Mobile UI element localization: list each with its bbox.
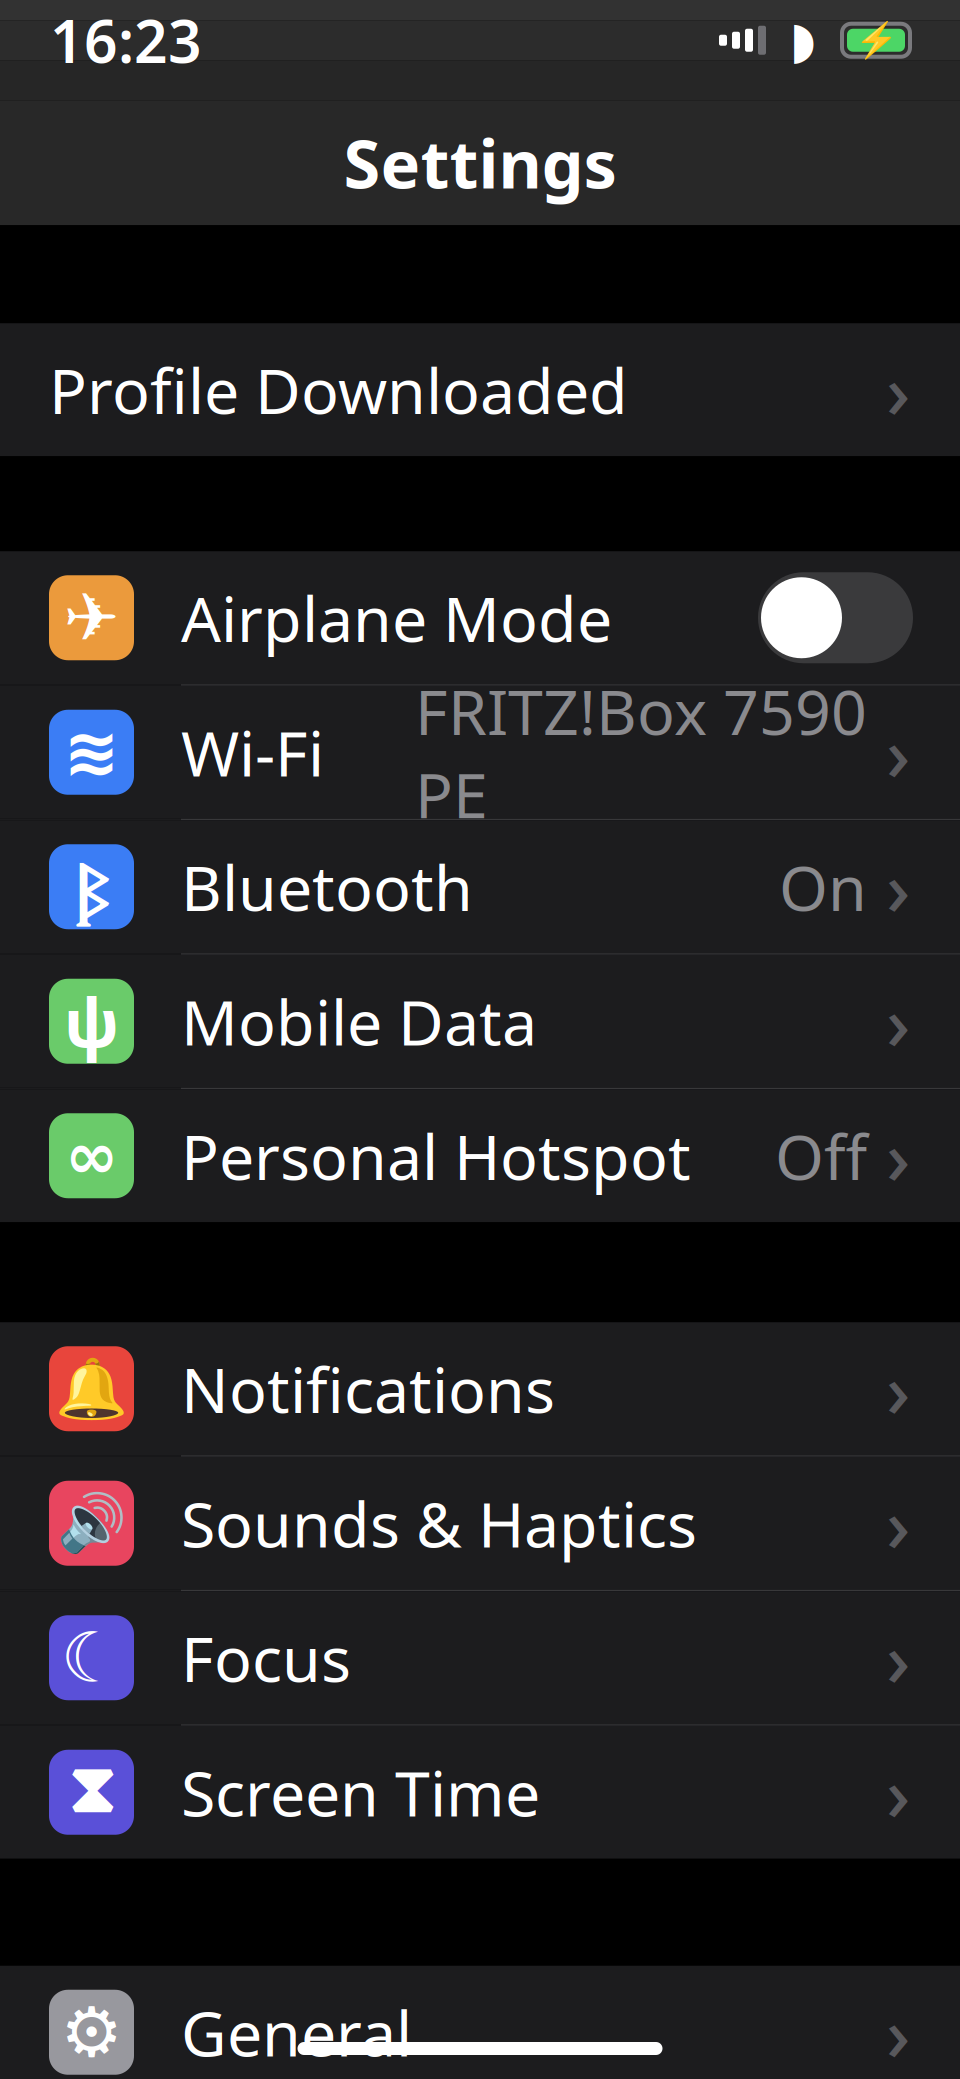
staticText: General [181,1991,412,2074]
staticText: ∞ [65,1119,118,1192]
staticText: Bluetooth [181,845,473,928]
staticText: Profile Downloaded [49,348,628,431]
staticText: FRITZ!Box 7590 PE [415,669,867,835]
staticText: ᛒ [74,843,109,930]
staticText: ☾ [60,1618,122,1697]
button[interactable]: ⧗ [0,1726,960,1859]
staticText: › [886,1339,910,1438]
button[interactable]: ∞ [0,1089,960,1222]
staticText: › [886,703,910,802]
staticText: Focus [181,1616,351,1699]
button[interactable]: 🔊 [0,1457,960,1590]
staticText: › [886,972,910,1071]
staticText: ⧗ [68,1760,115,1825]
staticText: › [886,1983,910,2079]
button[interactable]: Profile Downloaded [0,323,960,456]
staticText: ≋ [63,714,119,790]
staticText: › [886,340,910,439]
staticText: 🔔 [55,1355,128,1422]
staticText: ◗ [789,11,816,69]
staticText: Sounds & Haptics [181,1482,697,1565]
staticText: › [886,837,910,936]
staticText: Notifications [181,1347,555,1430]
button[interactable]: ✈ [0,551,960,684]
button[interactable]: ψ [0,955,960,1088]
staticText: ✈ [63,580,119,656]
staticText: Screen Time [181,1751,540,1834]
button[interactable]: 🔔 [0,1322,960,1455]
staticText: › [886,1474,910,1573]
staticText: ⚙ [60,1993,122,2072]
button[interactable]: ᛒ [0,820,960,953]
staticText: ⚡ [854,20,897,60]
staticText: Airplane Mode [181,576,612,659]
staticText: Off [775,1114,867,1197]
button[interactable]: ⚙ [0,1966,960,2079]
staticText: Mobile Data [181,980,537,1063]
staticText: ψ [64,977,119,1065]
staticText: 🔊 [56,1491,126,1555]
staticText: › [886,1106,910,1205]
staticText: Personal Hotspot [181,1114,691,1197]
staticText: On [779,845,867,928]
staticText: › [886,1608,910,1707]
button[interactable]: ≋ [0,686,960,819]
staticText: Wi-Fi [181,711,324,794]
staticText: 16:23 [50,1,202,79]
staticText: › [886,1743,910,1842]
button[interactable]: ☾ [0,1591,960,1724]
staticText: Settings [343,118,616,207]
